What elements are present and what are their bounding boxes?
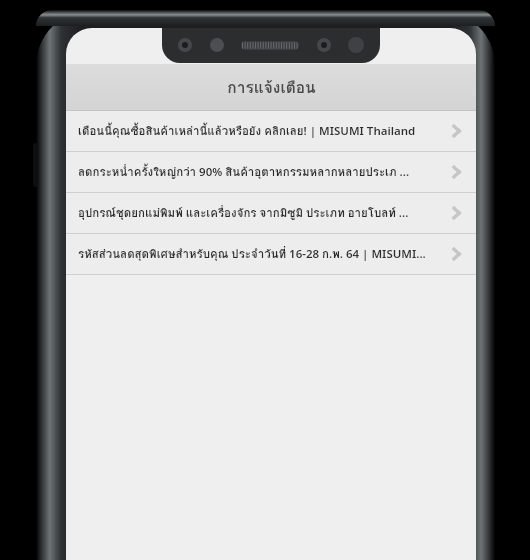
staticText: อุปกรณ์ชุดยกแม่พิมพ์ และเครื่องจักร จากม…	[78, 204, 409, 222]
other: Open notification	[444, 160, 468, 184]
staticText: การแจ้งเตือน	[227, 75, 316, 100]
other: Open notification	[444, 201, 468, 225]
button[interactable]: รหัสส่วนลดสุดพิเศษสำหรับคุณ ประจำวันที่ …	[66, 234, 476, 274]
other: Open notification	[444, 242, 468, 266]
button[interactable]: เดือนนี้คุณซื้อสินค้าเหล่านี้แล้วหรือยัง…	[66, 111, 476, 151]
button[interactable]: อุปกรณ์ชุดยกแม่พิมพ์ และเครื่องจักร จากม…	[66, 193, 476, 233]
staticText: เดือนนี้คุณซื้อสินค้าเหล่านี้แล้วหรือยัง…	[78, 122, 416, 140]
other: Open notification	[444, 119, 468, 143]
staticText: รหัสส่วนลดสุดพิเศษสำหรับคุณ ประจำวันที่ …	[78, 245, 426, 263]
button[interactable]: ลดกระหน่ำครั้งใหญ่กว่า 90% สินค้าอุตาหกร…	[66, 152, 476, 192]
staticText: ลดกระหน่ำครั้งใหญ่กว่า 90% สินค้าอุตาหกร…	[78, 163, 410, 181]
